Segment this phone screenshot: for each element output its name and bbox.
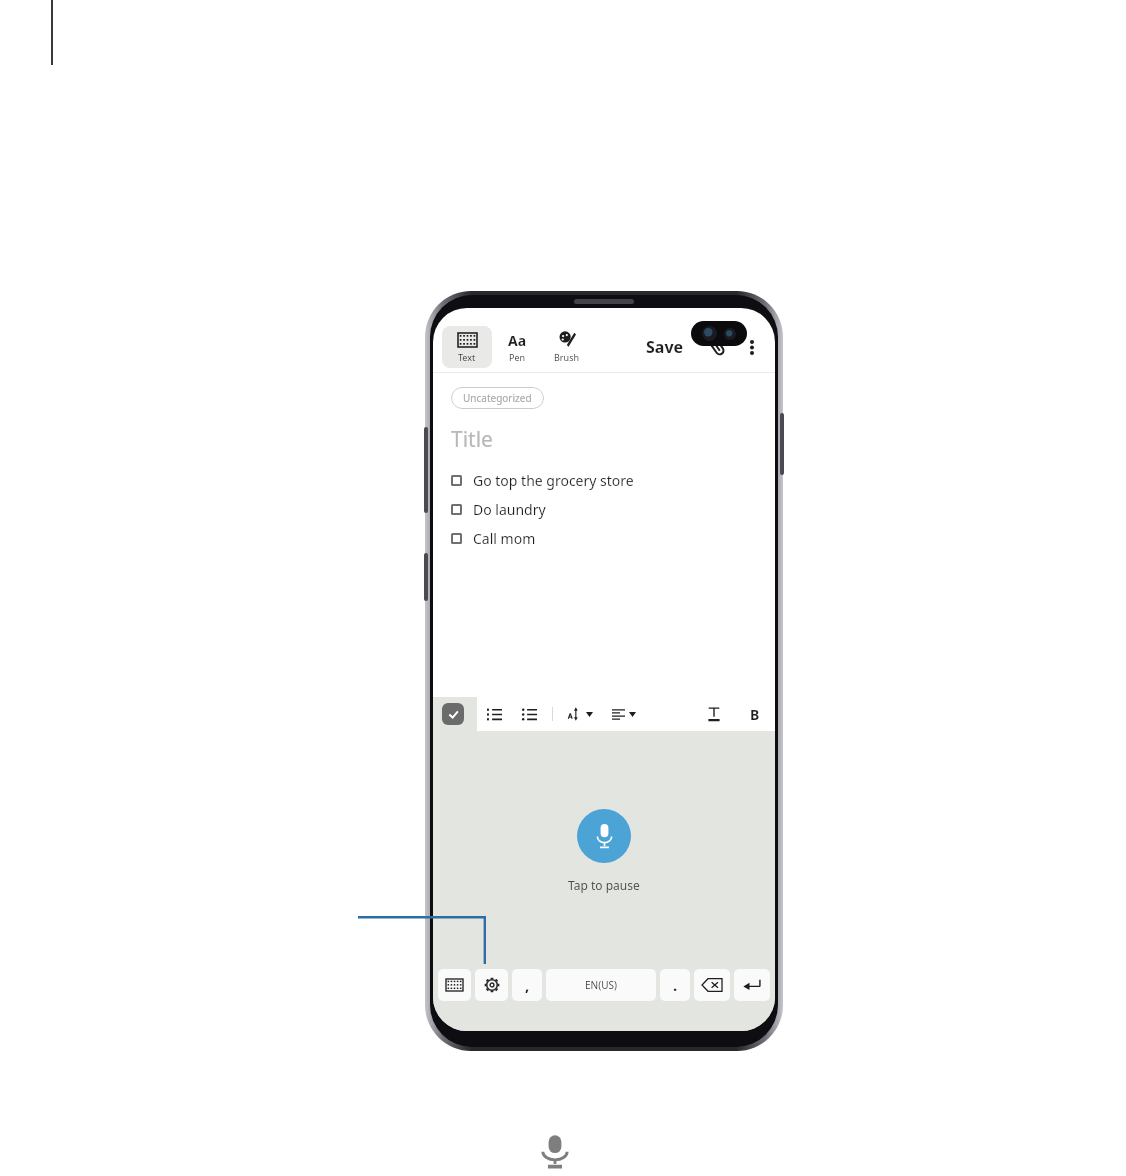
button[interactable]: Bulleted list — [520, 705, 539, 724]
staticText: B — [750, 705, 760, 724]
other: Pause recording — [577, 809, 631, 863]
button[interactable]: Call mom — [433, 524, 775, 553]
staticText: Uncategorized — [463, 391, 532, 405]
button[interactable]: Alignment — [610, 706, 638, 723]
staticText: . — [673, 975, 678, 995]
staticText: Title — [451, 425, 493, 454]
button[interactable]: Text size — [566, 705, 595, 723]
button[interactable]: Save — [640, 332, 690, 362]
button[interactable]: More options — [738, 333, 766, 361]
staticText: Aa — [508, 331, 527, 348]
staticText: Brush — [554, 351, 580, 363]
staticText: , — [525, 975, 530, 995]
button[interactable]: Checklist — [442, 703, 464, 725]
staticText: Pen — [509, 351, 526, 363]
button[interactable]: B — [747, 705, 763, 724]
button[interactable]: Do laundry — [433, 495, 775, 524]
staticText: Do laundry — [473, 500, 546, 519]
button[interactable]: Period — [660, 969, 690, 1001]
button[interactable]: Keyboard — [438, 969, 471, 1001]
button[interactable]: EN(US) — [546, 969, 656, 1001]
staticText: Go top the grocery store — [473, 471, 634, 490]
button[interactable]: Pause recording — [560, 801, 648, 901]
button[interactable]: Brush — [542, 326, 592, 368]
button[interactable]: Settings — [475, 969, 508, 1001]
staticText: Tap to pause — [568, 877, 640, 893]
button[interactable]: Backspace — [694, 969, 730, 1001]
staticText: Save — [646, 336, 684, 358]
button[interactable]: Uncategorized — [451, 387, 544, 409]
button[interactable]: Attach — [702, 332, 732, 362]
staticText: Call mom — [473, 529, 536, 548]
button[interactable]: Underline — [705, 705, 723, 723]
button[interactable]: Text — [442, 326, 492, 368]
button[interactable]: Aa — [492, 326, 542, 368]
button[interactable]: Enter — [734, 969, 770, 1001]
staticText: Text — [458, 351, 476, 363]
button[interactable]: Comma — [512, 969, 542, 1001]
button[interactable]: Numbered list — [485, 705, 504, 724]
staticText: EN(US) — [585, 978, 617, 992]
button[interactable]: Go top the grocery store — [433, 466, 775, 495]
